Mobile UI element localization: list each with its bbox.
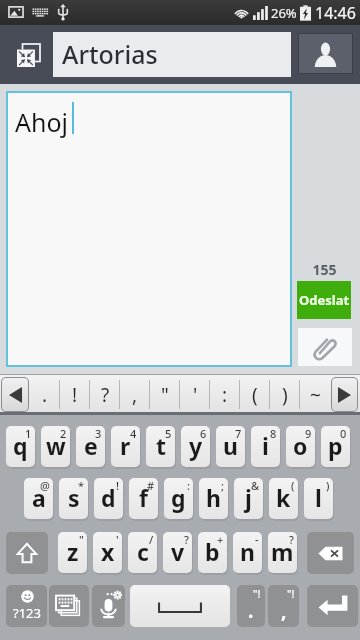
button[interactable]: Enter — [307, 585, 358, 627]
staticText: / — [149, 532, 154, 547]
staticText: . — [42, 382, 48, 408]
staticText: t — [156, 430, 166, 461]
staticText: 9 — [305, 426, 312, 441]
button[interactable]: Shift — [6, 532, 48, 574]
button[interactable]: 9 — [286, 426, 315, 469]
button[interactable]: / — [128, 532, 157, 575]
staticText: j — [245, 482, 252, 513]
staticText: 3 — [95, 426, 102, 441]
staticText: " — [79, 532, 84, 547]
staticText: s — [68, 482, 80, 513]
staticText: , — [281, 598, 287, 624]
button[interactable]: ? — [163, 532, 192, 575]
staticText: 2 — [60, 426, 67, 441]
staticText: " — [161, 382, 169, 408]
button[interactable]: Voice input — [92, 585, 125, 627]
button[interactable]: 5 — [146, 426, 175, 469]
button[interactable]: # — [129, 478, 158, 521]
button[interactable]: Space — [130, 585, 230, 627]
button[interactable]: "! — [268, 585, 299, 627]
button[interactable]: ( — [269, 478, 298, 521]
button[interactable]: ) — [304, 478, 333, 521]
button[interactable]: Backspace — [307, 532, 354, 574]
staticText: 8 — [270, 426, 277, 441]
button[interactable]: Attach — [298, 328, 352, 366]
staticText: : — [187, 478, 190, 493]
staticText: ' — [116, 532, 119, 547]
button[interactable]: : — [164, 478, 193, 521]
staticText: 0 — [340, 426, 347, 441]
button[interactable]: ( — [240, 374, 270, 415]
staticText: "! — [287, 586, 295, 601]
staticText: & — [251, 478, 260, 493]
staticText: q — [13, 430, 28, 461]
button[interactable]: 3 — [76, 426, 105, 469]
button[interactable]: - — [233, 532, 262, 575]
button[interactable]: ; — [199, 478, 228, 521]
staticText: Ahoj — [15, 105, 69, 139]
staticText: 6 — [200, 426, 207, 441]
staticText: l — [315, 482, 322, 513]
button[interactable]: * — [59, 478, 88, 521]
staticText: y — [189, 430, 203, 461]
button[interactable]: & — [234, 478, 263, 521]
staticText: d — [101, 482, 116, 513]
staticText: Artorias — [62, 37, 158, 71]
button[interactable]: ~ — [300, 374, 330, 415]
staticText: ?123 — [13, 604, 41, 622]
button[interactable]: ! — [94, 478, 123, 521]
staticText: u — [223, 430, 238, 461]
staticText: . — [248, 598, 254, 624]
staticText: ' — [193, 382, 198, 408]
staticText: , — [132, 382, 138, 408]
button[interactable]: : — [210, 374, 240, 415]
staticText: 26% — [271, 4, 297, 22]
button[interactable]: @ — [24, 478, 53, 521]
button[interactable]: 8 — [251, 426, 280, 469]
staticText: b — [205, 536, 220, 567]
button[interactable]: , — [120, 374, 150, 415]
button[interactable]: More suggestions — [332, 378, 357, 411]
staticText: 155 — [297, 260, 352, 279]
staticText: ! — [72, 382, 78, 408]
button[interactable]: + — [198, 532, 227, 575]
button[interactable]: Message text — [8, 93, 290, 365]
button[interactable]: ) — [270, 374, 300, 415]
staticText: ) — [282, 382, 288, 408]
staticText: ? — [289, 532, 294, 547]
button[interactable]: ' — [180, 374, 210, 415]
button[interactable]: 7 — [216, 426, 245, 469]
staticText: ; — [221, 478, 225, 493]
button[interactable]: "! — [237, 585, 265, 627]
staticText: "! — [253, 586, 261, 601]
button[interactable]: 0 — [321, 426, 350, 469]
staticText: o — [293, 430, 308, 461]
staticText: x — [101, 536, 115, 567]
staticText: * — [78, 478, 85, 493]
button[interactable]: ! — [60, 374, 90, 415]
button[interactable]: 1 — [6, 426, 35, 469]
button[interactable]: 2 — [41, 426, 70, 469]
button[interactable]: Collapse conversation — [11, 38, 45, 72]
button[interactable]: " — [58, 532, 87, 575]
staticText: 5 — [165, 426, 172, 441]
button[interactable]: . — [30, 374, 60, 415]
button[interactable]: Symbols — [6, 585, 47, 627]
button[interactable]: " — [150, 374, 180, 415]
button[interactable]: ' — [93, 532, 122, 575]
button[interactable]: ? — [90, 374, 120, 415]
button[interactable]: ? — [268, 532, 297, 575]
button[interactable]: Previous suggestions — [2, 378, 28, 411]
staticText: r — [120, 430, 131, 461]
staticText: a — [32, 482, 46, 513]
button[interactable]: 4 — [111, 426, 140, 469]
button[interactable]: Switch keyboard — [49, 585, 89, 627]
button[interactable]: Choose contact — [299, 34, 352, 73]
button[interactable]: 6 — [181, 426, 210, 469]
button[interactable]: Odeslat — [297, 281, 351, 319]
staticText: 1 — [25, 426, 32, 441]
staticText: w — [46, 430, 66, 461]
button[interactable]: Artorias — [53, 32, 291, 77]
staticText: p — [328, 430, 343, 461]
staticText: g — [171, 482, 186, 513]
